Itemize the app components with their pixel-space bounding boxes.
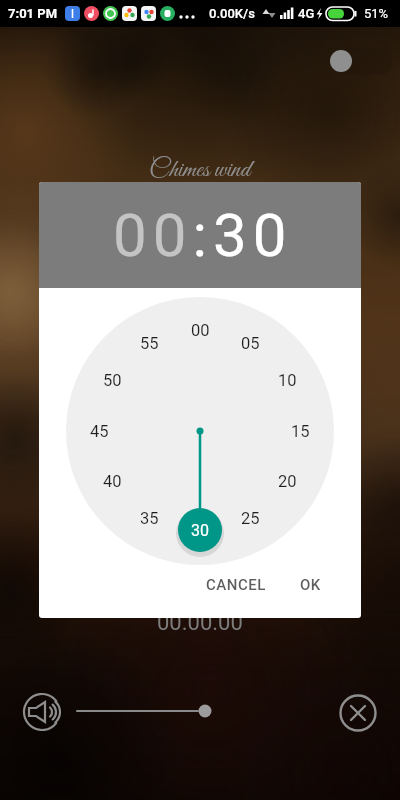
staticText: OK: [300, 576, 321, 594]
staticText: 00:30: [113, 200, 293, 270]
button[interactable]: OK: [280, 571, 340, 599]
staticText: 50: [103, 371, 122, 390]
button[interactable]: [22, 692, 62, 732]
staticText: 00.00.00: [157, 610, 243, 636]
button[interactable]: 30: [178, 508, 222, 552]
staticText: 51%: [364, 6, 389, 21]
staticText: 00: [191, 321, 210, 340]
staticText: 20: [278, 472, 297, 491]
staticText: CANCEL: [206, 576, 266, 594]
button[interactable]: [70, 696, 220, 726]
staticText: 4G: [298, 6, 315, 21]
staticText: 25: [241, 509, 260, 528]
staticText: 40: [103, 472, 122, 491]
staticText: 35: [140, 509, 159, 528]
staticText: 55: [140, 334, 159, 353]
button[interactable]: [330, 50, 352, 72]
staticText: 7:01 PM: [8, 6, 58, 21]
staticText: Chimes wind: [149, 154, 251, 187]
staticText: 10: [278, 371, 297, 390]
staticText: 45: [90, 422, 109, 441]
staticText: 05: [241, 334, 260, 353]
staticText: 0.00K/s: [209, 6, 255, 21]
staticText: 15: [291, 422, 310, 441]
button[interactable]: [338, 693, 378, 733]
staticText: 30: [191, 521, 209, 540]
button[interactable]: CANCEL: [191, 571, 281, 599]
